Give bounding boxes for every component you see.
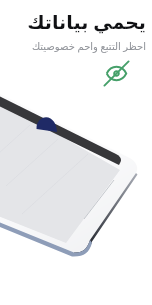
staticText: احظر التتبع واحم خصوصيتك [31, 39, 146, 53]
staticText: يحمي بياناتك [27, 9, 146, 35]
